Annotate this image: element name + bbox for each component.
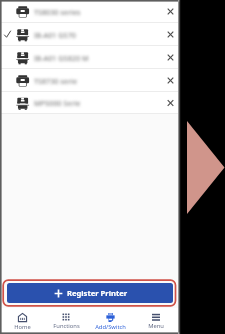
button[interactable]: TS8730 serie [0, 69, 178, 92]
button[interactable]: MP5000 Serie [0, 92, 178, 114]
staticText: Functions [53, 322, 80, 330]
staticText: Register Printer [67, 288, 128, 298]
staticText: IB-A01 G570 [34, 30, 76, 40]
staticText: Home [14, 323, 31, 331]
button[interactable]: IB-A01 G570 [0, 23, 178, 46]
staticText: TS8030 series [34, 7, 81, 17]
staticText: Add/Switch [95, 323, 126, 331]
button[interactable]: Register Printer [7, 283, 173, 303]
staticText: Menu [148, 322, 164, 330]
button[interactable]: IB-A01 G5820 M [0, 46, 178, 69]
button[interactable]: TS8030 series [0, 0, 178, 23]
button[interactable]: Add/Switch [88, 308, 133, 332]
staticText: IB-A01 G5820 M [34, 53, 89, 63]
button[interactable]: Home [0, 308, 44, 332]
button[interactable]: Menu [133, 308, 178, 332]
staticText: MP5000 Serie [34, 98, 81, 108]
button[interactable]: Functions [44, 308, 88, 332]
staticText: TS8730 serie [34, 76, 78, 86]
